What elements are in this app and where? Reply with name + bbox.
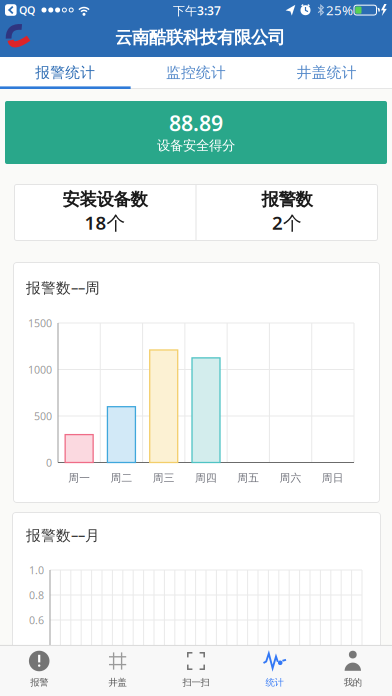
staticText: 监控统计	[166, 63, 226, 81]
staticText: 18个	[84, 210, 125, 235]
staticText: 0.6	[29, 613, 44, 627]
staticText: 88.89	[169, 109, 223, 137]
staticText: 周六	[280, 471, 302, 484]
staticText: 周五	[237, 471, 259, 484]
staticText: 1000	[28, 362, 52, 377]
staticText: 周三	[153, 471, 175, 484]
staticText: 周四	[195, 471, 217, 484]
staticText: 2个	[272, 210, 302, 235]
staticText: 0.8	[29, 588, 44, 602]
staticText: QQ	[19, 3, 35, 17]
staticText: 1.0	[29, 563, 44, 577]
staticText: 500	[34, 409, 52, 423]
staticText: 报警数––周	[26, 278, 100, 297]
staticText: 云南酷联科技有限公司	[115, 27, 285, 48]
staticText: 周日	[322, 471, 344, 484]
staticText: 0	[46, 455, 52, 470]
staticText: 安装设备数	[62, 189, 147, 210]
staticText: 下午3:37	[173, 2, 221, 18]
staticText: 设备安全得分	[157, 137, 235, 154]
staticText: 井盖统计	[297, 63, 357, 81]
staticText: 扫一扫	[182, 677, 209, 688]
staticText: 周二	[110, 471, 132, 484]
staticText: 报警统计	[35, 63, 95, 81]
staticText: 25%	[326, 1, 353, 19]
staticText: 统计	[265, 677, 283, 688]
staticText: 我的	[344, 677, 362, 688]
staticText: 周一	[68, 471, 90, 484]
staticText: 报警数––月	[26, 525, 100, 545]
staticText: 1500	[28, 316, 52, 330]
staticText: 报警	[30, 677, 48, 688]
staticText: 报警数	[261, 189, 312, 210]
staticText: 井盖	[109, 677, 127, 688]
